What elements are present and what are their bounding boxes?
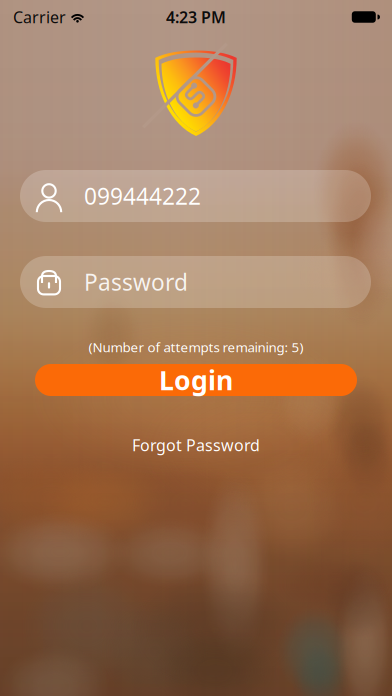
staticText: Forgot Password: [132, 434, 260, 456]
button[interactable]: Login: [35, 364, 357, 396]
button[interactable]: Forgot Password: [126, 434, 266, 456]
staticText: Password: [84, 267, 188, 297]
staticText: Carrier: [13, 6, 66, 28]
staticText: 099444222: [84, 181, 201, 211]
staticText: Login: [159, 362, 233, 398]
staticText: 4:23 PM: [166, 6, 226, 28]
staticText: (Number of attempts remaining: 5): [88, 338, 303, 356]
